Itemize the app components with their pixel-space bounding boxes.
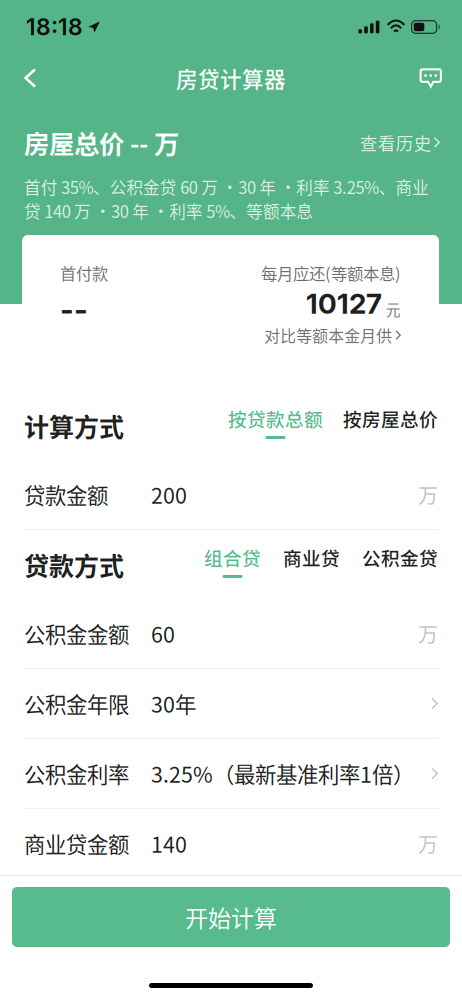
staticText: 首付款 [60, 261, 108, 284]
button[interactable]: 开始计算 [12, 887, 450, 947]
button[interactable]: 贷款金额 [0, 460, 462, 529]
staticText: 200 [151, 479, 187, 510]
staticText: 商业贷 [283, 544, 340, 571]
staticText: 房贷计算器 [176, 62, 286, 94]
button[interactable]: 商业贷 [283, 544, 340, 578]
staticText: 查看历史 [360, 130, 432, 155]
staticText: 按房屋总价 [343, 405, 438, 432]
staticText: 每月应还(等额本息) [261, 261, 401, 285]
button[interactable]: 公积金利率 [0, 739, 462, 808]
staticText: 对比等额本金月供 [264, 324, 392, 346]
staticText: 商业贷金额 [24, 828, 129, 859]
button[interactable]: 公积金金额 [0, 599, 462, 668]
staticText: 18:18 [26, 13, 83, 41]
staticText: 10127 [306, 287, 382, 321]
staticText: 万 [418, 829, 438, 858]
staticText: 首付 35%、公积金贷 60 万 ·30 年 ·利率 3.25%、商业贷 140… [24, 175, 429, 223]
button[interactable]: 公积金贷 [362, 544, 438, 578]
staticText: 贷款金额 [24, 479, 108, 510]
staticText: 万 [418, 480, 438, 509]
staticText: 140 [151, 828, 187, 859]
button[interactable]: 按房屋总价 [343, 405, 438, 439]
button[interactable]: 对比等额本金月供 [264, 324, 401, 346]
button[interactable]: 商业贷金额 [0, 809, 462, 878]
staticText: 房屋总价 -- 万 [24, 124, 179, 161]
staticText: 贷款方式 [24, 546, 124, 583]
button[interactable]: Back [0, 54, 55, 102]
staticText: 按贷款总额 [228, 405, 323, 432]
staticText: 计算方式 [24, 407, 124, 444]
staticText: 公积金贷 [362, 544, 438, 571]
staticText: 组合贷 [204, 544, 261, 571]
staticText: 30年 [151, 688, 196, 719]
button[interactable]: 按贷款总额 [228, 405, 323, 439]
button[interactable]: 查看历史 [360, 130, 440, 155]
staticText: 万 [418, 619, 438, 648]
staticText: 公积金年限 [24, 688, 129, 719]
staticText: 60 [151, 618, 175, 649]
staticText: -- [60, 291, 88, 328]
button[interactable]: 公积金年限 [0, 669, 462, 738]
staticText: 公积金利率 [24, 758, 129, 789]
button[interactable]: 组合贷 [204, 544, 261, 578]
staticText: 开始计算 [185, 900, 277, 934]
staticText: 公积金金额 [24, 618, 129, 649]
button[interactable]: Feedback [401, 54, 462, 102]
staticText: 3.25%（最新基准利率1倍） [151, 758, 414, 789]
staticText: 元 [386, 299, 401, 320]
